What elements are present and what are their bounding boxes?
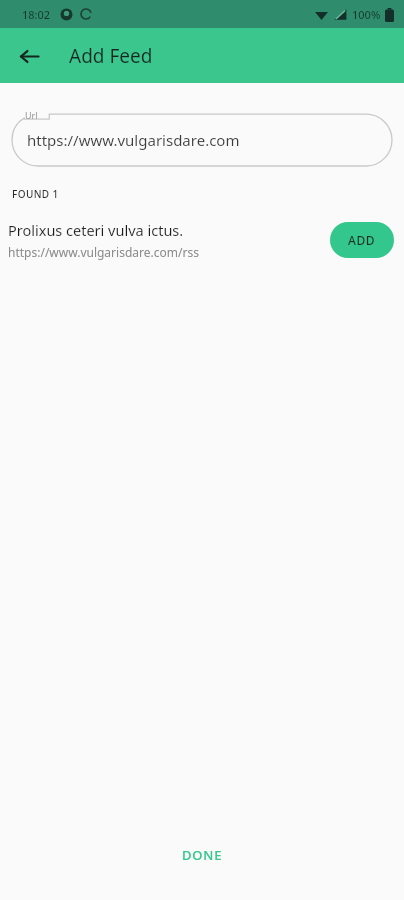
staticText: https://www.vulgarisdare.com: [27, 130, 240, 150]
button[interactable]: Back: [9, 36, 49, 76]
staticText: 100%: [352, 7, 381, 22]
staticText: Url: [25, 109, 38, 121]
staticText: Prolixus ceteri vulva ictus.: [8, 220, 184, 240]
staticText: DONE: [182, 846, 223, 864]
button[interactable]: DONE: [164, 838, 241, 872]
button[interactable]: Url: [12, 106, 392, 166]
staticText: ADD: [348, 232, 376, 248]
staticText: Add Feed: [69, 43, 153, 69]
button[interactable]: Prolixus ceteri vulva ictus.: [0, 216, 404, 264]
staticText: 18:02: [22, 7, 51, 22]
staticText: https://www.vulgarisdare.com/rss: [8, 244, 199, 260]
button[interactable]: ADD: [330, 222, 394, 258]
staticText: FOUND 1: [12, 187, 59, 201]
